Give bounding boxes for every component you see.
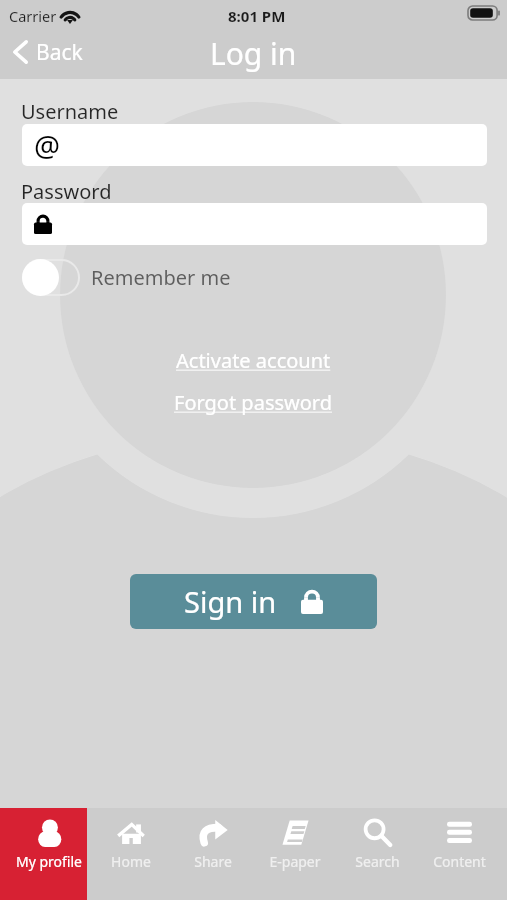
button[interactable]: Remember me <box>22 259 231 296</box>
staticText: Home <box>111 852 151 871</box>
staticText: Password <box>21 178 112 205</box>
staticText: Sign in <box>184 582 277 621</box>
button[interactable]: Password <box>22 203 487 245</box>
staticText: My profile <box>16 852 82 871</box>
button[interactable]: Share <box>172 808 254 900</box>
staticText: Remember me <box>91 264 231 291</box>
button[interactable]: Sign in <box>130 574 377 629</box>
staticText: Content <box>433 852 486 871</box>
staticText: Forgot password <box>174 389 333 416</box>
button[interactable]: Forgot password <box>174 389 333 416</box>
staticText: Activate account <box>176 347 331 374</box>
button[interactable]: Username <box>22 124 487 166</box>
staticText: 8:01 PM <box>228 6 286 26</box>
staticText: @ <box>34 126 61 165</box>
button[interactable]: Search <box>336 808 418 900</box>
staticText: Back <box>36 38 83 67</box>
button[interactable]: Back <box>0 29 507 75</box>
button[interactable]: Content <box>418 808 500 900</box>
button[interactable]: Home <box>90 808 172 900</box>
staticText: Carrier <box>9 6 57 26</box>
button[interactable]: My profile <box>8 808 90 900</box>
staticText: Share <box>194 852 232 871</box>
staticText: Search <box>355 852 400 871</box>
staticText: Log in <box>210 33 297 74</box>
button[interactable]: E-paper <box>254 808 336 900</box>
staticText: E-paper <box>269 852 321 871</box>
button[interactable]: Activate account <box>176 347 331 374</box>
staticText: Username <box>21 98 119 125</box>
